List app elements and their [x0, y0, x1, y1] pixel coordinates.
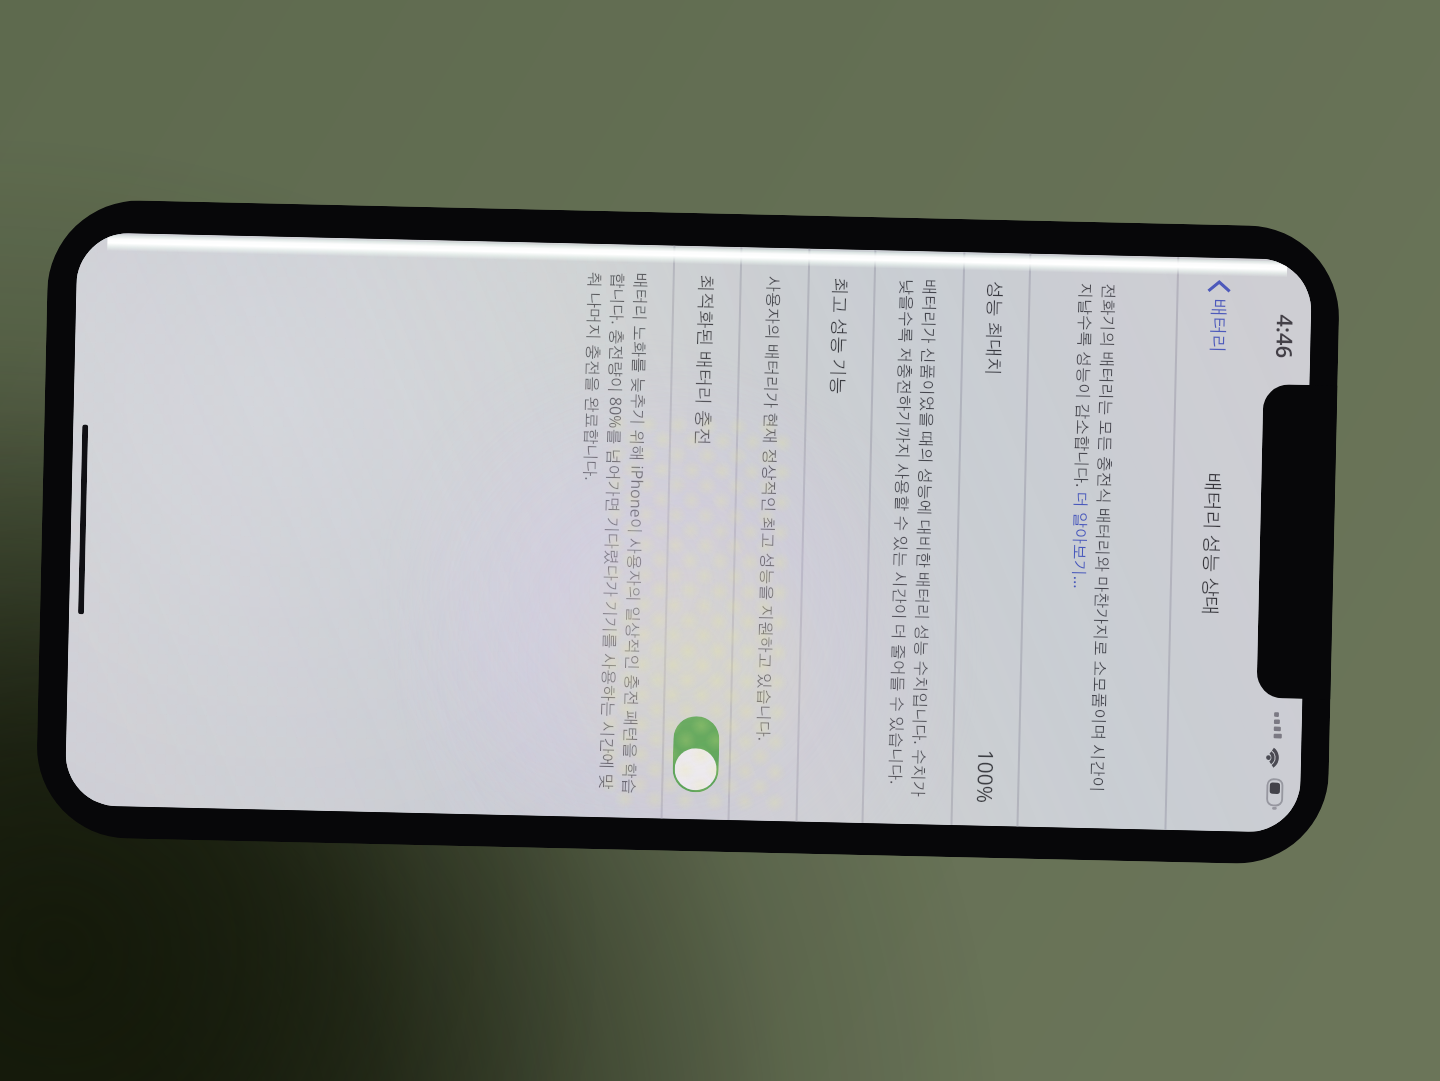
staticText: 배터리 성능 상태 — [1198, 472, 1227, 616]
button[interactable]: 최적화된 배터리 충전 — [662, 246, 740, 820]
staticText: 배터리가 신품이었을 때의 성능에 대비한 배터리 성능 수치입니다. 수치가 … — [884, 279, 942, 802]
staticText: 최적화된 배터리 충전 — [691, 274, 720, 447]
button[interactable]: 성능 최대치 — [952, 252, 1029, 826]
staticText: 배터리 노화를 늦추기 위해 iPhone이 사용자의 일상적인 충전 패턴을 … — [572, 272, 653, 796]
button[interactable]: 배터리 — [1198, 257, 1239, 367]
staticText: 배터리 — [1206, 299, 1230, 353]
staticText: 사용자의 배터리가 현재 정상적인 최고 성능을 지원하고 있습니다. — [752, 276, 786, 742]
button[interactable]: 최적화된 배터리 충전 켜기 — [672, 716, 720, 793]
staticText: 전화기의 배터리는 모든 충전식 배터리와 마찬가지로 소모품이며 시간이 지날… — [1063, 283, 1121, 806]
staticText: 성능 최대치 — [982, 281, 1009, 376]
staticText: 4:46 — [1270, 314, 1301, 359]
staticText: 최고 성능 기능 — [826, 277, 854, 396]
button[interactable]: 최고 성능 기능 — [797, 249, 874, 823]
staticText: 100% — [970, 749, 1000, 804]
